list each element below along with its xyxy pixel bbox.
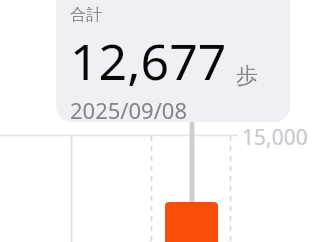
button[interactable]: 2025/09/08 の歩数 12,677 歩 [165, 202, 218, 242]
button[interactable]: 合計 [56, 0, 290, 122]
staticText: 12,677 [70, 27, 227, 95]
staticText: 合計 [70, 5, 102, 25]
staticText: 歩 [236, 62, 258, 90]
staticText: 15,000 [242, 123, 308, 152]
staticText: 2025/09/08 [70, 95, 188, 122]
